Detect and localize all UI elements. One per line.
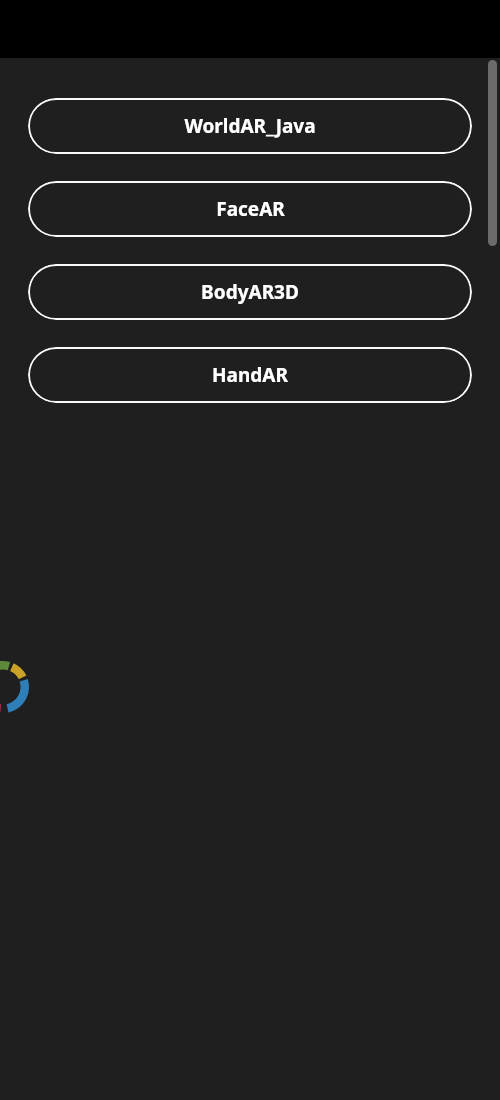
other: Scroll position — [488, 60, 497, 246]
button[interactable]: BodyAR3D — [28, 264, 472, 320]
button[interactable]: FaceAR — [28, 181, 472, 237]
button[interactable]: WorldAR_Java — [28, 98, 472, 154]
staticText: WorldAR_Java — [184, 113, 316, 139]
button[interactable]: HandAR — [28, 347, 472, 403]
staticText: BodyAR3D — [201, 279, 299, 305]
staticText: HandAR — [212, 362, 288, 388]
staticText: FaceAR — [216, 196, 285, 222]
